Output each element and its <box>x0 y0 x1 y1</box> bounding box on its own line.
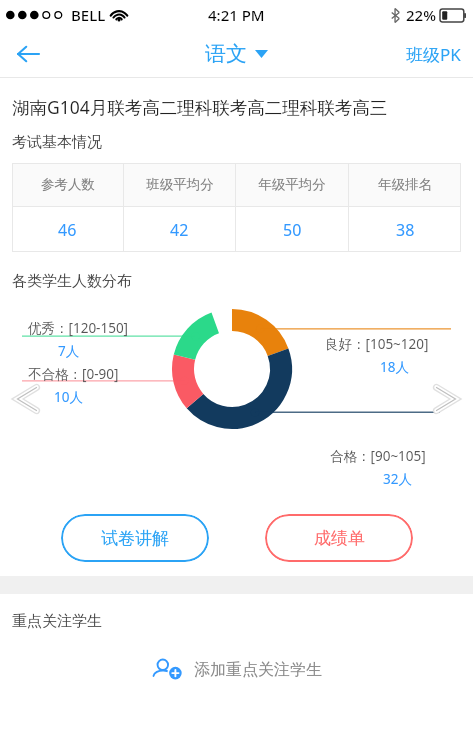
button[interactable]: Previous <box>10 382 44 416</box>
staticText: 年级排名 <box>378 176 432 193</box>
staticText: 各类学生人数分布 <box>12 272 132 291</box>
staticText: 重点关注学生 <box>12 612 102 631</box>
staticText: 语文 <box>205 41 247 67</box>
staticText: 班级PK <box>406 43 461 66</box>
staticText: 7人 <box>58 342 80 360</box>
staticText: 22% <box>406 5 436 25</box>
staticText: 合格：[90~105] <box>330 447 426 465</box>
staticText: 成绩单 <box>314 528 365 549</box>
staticText: 10人 <box>54 388 83 406</box>
button[interactable]: 成绩单 <box>265 514 413 562</box>
button[interactable]: 班级PK <box>394 35 473 74</box>
staticText: 18人 <box>380 358 409 376</box>
staticText: 试卷讲解 <box>101 528 169 549</box>
button[interactable]: Next <box>429 382 463 416</box>
staticText: 42 <box>170 219 189 241</box>
staticText: 年级平均分 <box>258 176 326 193</box>
staticText: BELL <box>71 5 106 25</box>
staticText: 良好：[105~120] <box>325 335 429 353</box>
staticText: 38 <box>396 219 415 241</box>
staticText: 湖南G104月联考高二理科联考高二理科联考高三 <box>12 95 388 119</box>
staticText: 参考人数 <box>41 176 95 193</box>
button[interactable]: 试卷讲解 <box>61 514 209 562</box>
staticText: 32人 <box>383 470 412 488</box>
staticText: 4:21 PM <box>208 5 265 25</box>
staticText: 班级平均分 <box>146 176 214 193</box>
staticText: 添加重点关注学生 <box>194 660 322 680</box>
staticText: 考试基本情况 <box>12 133 102 152</box>
button[interactable]: Back <box>8 34 48 74</box>
button[interactable]: 语文 <box>205 41 268 67</box>
staticText: 50 <box>283 219 302 241</box>
staticText: 46 <box>58 219 77 241</box>
button[interactable]: 添加重点关注学生 <box>0 657 473 683</box>
staticText: 不合格：[0-90] <box>28 365 119 383</box>
staticText: 优秀：[120-150] <box>28 319 129 337</box>
